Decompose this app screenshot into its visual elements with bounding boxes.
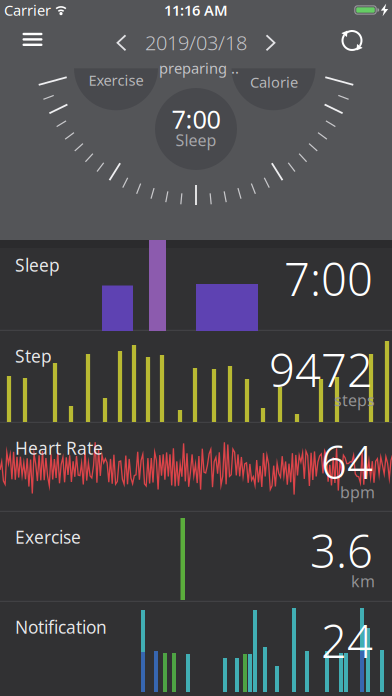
- staticText: 9472: [269, 339, 373, 400]
- staticText: steps: [334, 389, 375, 411]
- staticText: Notification: [15, 615, 107, 638]
- staticText: Heart Rate: [15, 436, 103, 459]
- staticText: 24: [321, 610, 373, 671]
- staticText: 11:16 AM: [164, 0, 228, 20]
- staticText: Carrier: [4, 0, 51, 20]
- button[interactable]: Notification: [0, 602, 392, 696]
- staticText: 2019/03/18: [145, 29, 247, 56]
- button[interactable]: Heart Rate: [0, 423, 392, 512]
- staticText: bpm: [340, 481, 375, 503]
- button[interactable]: Menu: [20, 31, 44, 48]
- button[interactable]: Refresh: [337, 25, 367, 55]
- staticText: 3.6: [310, 520, 373, 581]
- staticText: preparing ..: [159, 58, 239, 78]
- staticText: km: [351, 570, 375, 592]
- button[interactable]: Previous day: [116, 34, 127, 51]
- button[interactable]: Exercise: [0, 512, 392, 602]
- staticText: Exercise: [15, 525, 81, 548]
- staticText: Sleep: [175, 129, 216, 151]
- staticText: 64: [321, 431, 373, 492]
- staticText: Step: [15, 344, 52, 367]
- button[interactable]: Next day: [265, 34, 276, 51]
- button[interactable]: Step: [0, 331, 392, 423]
- staticText: Sleep: [15, 253, 60, 276]
- button[interactable]: 2019/03/18: [145, 29, 247, 56]
- staticText: 7:00: [171, 102, 220, 136]
- staticText: 7:00: [284, 248, 373, 309]
- staticText: Exercise: [88, 70, 143, 90]
- staticText: Calorie: [250, 72, 298, 92]
- button[interactable]: Sleep: [0, 240, 392, 331]
